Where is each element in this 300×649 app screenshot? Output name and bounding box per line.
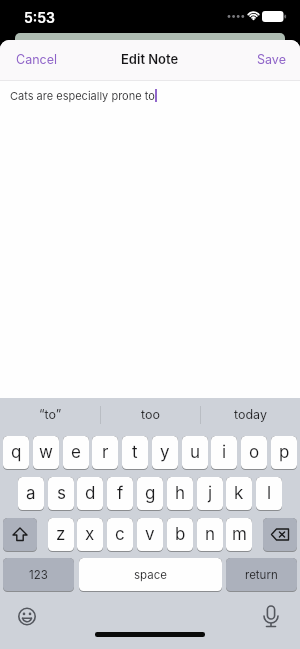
- staticText: 5:53: [24, 9, 55, 26]
- staticText: i: [222, 442, 227, 463]
- staticText: y: [160, 442, 170, 463]
- button[interactable]: r: [92, 436, 118, 470]
- staticText: q: [11, 442, 22, 463]
- staticText: return: [245, 568, 278, 582]
- button[interactable]: t: [122, 436, 148, 470]
- staticText: u: [190, 442, 201, 463]
- button[interactable]: j: [197, 477, 223, 511]
- button[interactable]: i: [211, 436, 237, 470]
- staticText: p: [279, 442, 290, 463]
- button[interactable]: [263, 518, 297, 552]
- staticText: 123: [29, 568, 48, 582]
- staticText: z: [56, 524, 66, 545]
- button[interactable]: [13, 603, 41, 631]
- staticText: n: [205, 524, 216, 545]
- button[interactable]: Cancel: [16, 52, 57, 67]
- button[interactable]: g: [137, 477, 163, 511]
- button[interactable]: p: [271, 436, 297, 470]
- staticText: b: [175, 524, 186, 545]
- button[interactable]: v: [137, 518, 163, 552]
- button[interactable]: [100, 398, 200, 434]
- button[interactable]: y: [152, 436, 178, 470]
- button[interactable]: space: [79, 558, 222, 592]
- button[interactable]: k: [226, 477, 252, 511]
- staticText: r: [102, 442, 109, 463]
- staticText: Save: [257, 52, 286, 67]
- staticText: d: [85, 483, 96, 504]
- button[interactable]: c: [107, 518, 133, 552]
- staticText: e: [71, 442, 81, 463]
- staticText: t: [132, 442, 138, 463]
- button[interactable]: Save: [257, 52, 286, 67]
- staticText: c: [115, 524, 125, 545]
- button[interactable]: a: [18, 477, 44, 511]
- button[interactable]: o: [241, 436, 267, 470]
- button[interactable]: q: [3, 436, 29, 470]
- button[interactable]: s: [48, 477, 74, 511]
- button[interactable]: [3, 518, 37, 552]
- button[interactable]: e: [63, 436, 89, 470]
- staticText: o: [249, 442, 260, 463]
- staticText: a: [26, 483, 36, 504]
- staticText: k: [234, 483, 244, 504]
- staticText: x: [85, 524, 95, 545]
- staticText: today: [234, 407, 267, 422]
- button[interactable]: [200, 398, 300, 434]
- button[interactable]: x: [77, 518, 103, 552]
- staticText: j: [208, 483, 213, 504]
- button[interactable]: l: [256, 477, 282, 511]
- button[interactable]: z: [48, 518, 74, 552]
- staticText: space: [134, 568, 167, 582]
- button[interactable]: b: [167, 518, 193, 552]
- staticText: Cancel: [16, 52, 57, 67]
- staticText: h: [175, 483, 186, 504]
- button[interactable]: w: [33, 436, 59, 470]
- button[interactable]: h: [167, 477, 193, 511]
- button[interactable]: [0, 398, 100, 434]
- button[interactable]: 123: [3, 558, 74, 592]
- staticText: s: [57, 483, 66, 504]
- button[interactable]: f: [107, 477, 133, 511]
- staticText: f: [117, 483, 124, 504]
- button[interactable]: d: [77, 477, 103, 511]
- staticText: m: [232, 524, 247, 545]
- staticText: too: [141, 407, 160, 422]
- staticText: Edit Note: [121, 51, 179, 67]
- staticText: Cats are especially prone to: [10, 89, 155, 102]
- button[interactable]: n: [197, 518, 223, 552]
- staticText: “to”: [39, 407, 62, 422]
- staticText: v: [145, 524, 155, 545]
- button[interactable]: m: [226, 518, 252, 552]
- staticText: w: [39, 442, 53, 463]
- button[interactable]: [257, 601, 285, 629]
- button[interactable]: return: [226, 558, 297, 592]
- staticText: l: [267, 483, 272, 504]
- button[interactable]: u: [182, 436, 208, 470]
- staticText: g: [145, 483, 156, 504]
